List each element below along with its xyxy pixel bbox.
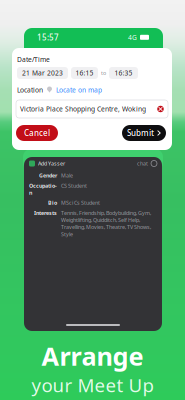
button[interactable]: Submit xyxy=(122,125,166,141)
button[interactable]: Clear location xyxy=(157,105,164,112)
staticText: 16:15 xyxy=(75,69,93,77)
staticText: your Meet Up xyxy=(31,373,153,397)
button[interactable]: Cancel xyxy=(16,125,58,141)
staticText: Gender xyxy=(39,172,57,179)
staticText: 15:57 xyxy=(37,32,59,43)
staticText: Locate on map xyxy=(56,86,102,94)
staticText: 21 Mar 2023 xyxy=(22,69,63,77)
staticText: MSci Cs Student xyxy=(61,199,100,206)
staticText: Male xyxy=(61,172,73,179)
staticText: Arrange xyxy=(41,339,143,373)
staticText: Date/Time xyxy=(17,55,50,64)
staticText: chat xyxy=(137,160,148,167)
staticText: Victoria Place Shopping Centre, Woking xyxy=(20,105,146,113)
staticText: Cancel xyxy=(24,128,50,138)
staticText: 16:35 xyxy=(114,69,132,77)
staticText: to xyxy=(101,69,106,77)
staticText: Add Yasser xyxy=(38,160,65,167)
staticText: Tennis, Friendship, Bodybuilding, Gym, W… xyxy=(61,209,151,238)
staticText: Location xyxy=(17,86,43,94)
staticText: Bio xyxy=(48,199,57,206)
staticText: Occupation xyxy=(29,182,57,196)
staticText: 4G xyxy=(128,33,137,42)
staticText: Interests xyxy=(34,209,57,216)
staticText: CS Student xyxy=(61,182,87,189)
button[interactable]: Locate on map xyxy=(56,86,102,94)
staticText: Submit xyxy=(127,128,154,138)
